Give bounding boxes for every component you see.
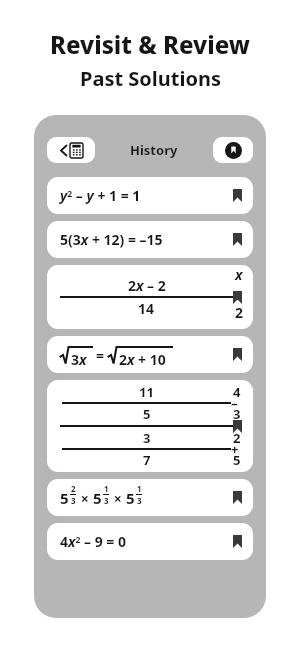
staticText: × (77, 489, 93, 508)
button[interactable]: Back to calculator (47, 137, 95, 163)
staticText: = (96, 346, 105, 365)
button[interactable]: 5 (47, 479, 253, 516)
staticText: 5(3x + 12) = –15 (60, 230, 163, 249)
staticText: Revisit & Review (50, 28, 250, 61)
staticText: 7 (143, 451, 151, 469)
button[interactable]: 3x (47, 336, 253, 373)
button[interactable]: 4x2 – 9 = 0 (47, 523, 253, 560)
staticText: Past Solutions (80, 65, 221, 92)
staticText: 14 (138, 299, 155, 318)
staticText: 2x + 10 (119, 350, 166, 365)
staticText: 2x – 2 (128, 276, 166, 295)
staticText: 5 (143, 405, 151, 423)
staticText: 1 (137, 483, 142, 494)
button[interactable]: 5(3x + 12) = –15 (47, 221, 253, 258)
staticText: 5 (60, 488, 69, 508)
staticText: 1 (104, 483, 109, 494)
button[interactable]: Filter bookmarked (213, 137, 253, 163)
button[interactable]: 11 (47, 380, 253, 472)
staticText: 11 (139, 383, 154, 401)
staticText: History (130, 141, 178, 159)
staticText: y2 – y + 1 = 1 (60, 186, 141, 205)
button[interactable]: y2 – y + 1 = 1 (47, 177, 253, 214)
staticText: 3 (104, 495, 109, 506)
staticText: 3 (71, 495, 76, 506)
staticText: 5 (93, 488, 102, 508)
staticText: 3 (137, 495, 142, 506)
staticText: 5 (126, 488, 135, 508)
staticText: 2 (71, 483, 76, 494)
staticText: 4x2 – 9 = 0 (60, 532, 127, 551)
staticText: 3x (71, 350, 87, 365)
button[interactable]: 2x – 2 (47, 265, 253, 329)
staticText: 3 (143, 429, 151, 447)
staticText: × (110, 489, 126, 508)
